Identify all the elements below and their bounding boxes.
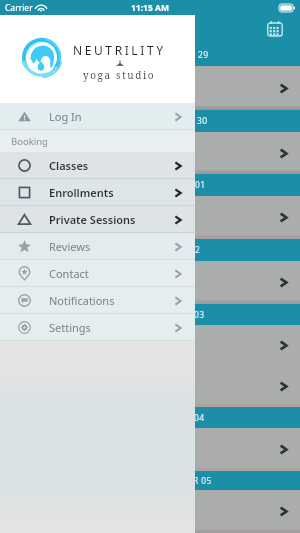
button[interactable] [0,132,300,174]
button[interactable] [0,325,300,365]
button[interactable] [0,490,300,533]
staticText: 04 [194,412,205,424]
staticText: Private Sessions [49,212,136,227]
staticText: 30 [197,115,208,127]
button[interactable]: Private Sessions [0,206,195,233]
button[interactable] [0,261,300,304]
staticText: 11:15 AM [131,2,169,14]
staticText: Classes [49,158,89,173]
staticText: Contact [49,266,89,281]
button[interactable]: Notifications [0,287,195,314]
button[interactable]: Log In [0,103,195,130]
staticText: Reviews [49,239,91,254]
staticText: NEUTRILITY [73,42,166,58]
button[interactable] [0,365,300,407]
staticText: yoga studio [83,68,156,82]
staticText: Enrollments [49,185,114,200]
staticText: R 05 [193,475,212,487]
button[interactable] [0,66,300,110]
button[interactable] [0,428,300,471]
staticText: Booking [11,135,48,148]
staticText: 2 [195,244,201,256]
button[interactable]: Settings [0,314,195,341]
button[interactable] [0,196,300,239]
staticText: 01 [195,179,206,191]
staticText: Settings [49,320,91,335]
staticText: 03 [194,309,205,321]
button[interactable]: Contact [0,260,195,287]
button[interactable]: Reviews [0,233,195,260]
button[interactable]: Enrollments [0,179,195,206]
staticText: Log In [49,109,82,124]
staticText: 29 [198,49,209,61]
staticText: Notifications [49,293,115,308]
button[interactable]: Classes [0,152,195,179]
button[interactable]: Calendar [266,20,284,38]
staticText: Carrier [5,2,33,14]
